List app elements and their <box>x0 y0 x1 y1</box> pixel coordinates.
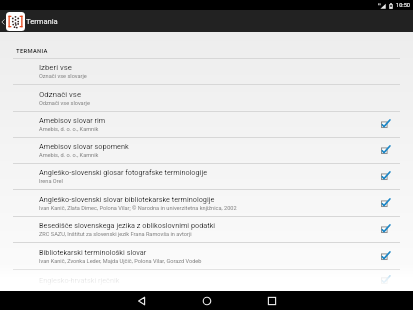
staticText: ZRC SAZU, Inštitut za slovenski jezik Fr… <box>39 231 192 238</box>
staticText: Besedišče slovenskega jezika z oblikoslo… <box>39 221 216 230</box>
button[interactable]: Besedišče slovenskega jezika z oblikoslo… <box>0 217 413 242</box>
staticText: Označi vse slovarje <box>39 73 87 80</box>
staticText: Amebisov slovar rim <box>39 116 106 125</box>
button[interactable]: Angleško-slovenski glosar fotografske te… <box>0 164 413 189</box>
button[interactable]: Navigate up <box>0 12 26 31</box>
button[interactable]: Back <box>109 291 174 310</box>
button[interactable]: Bibliotekarski terminološki slovar <box>0 243 413 269</box>
button[interactable]: Izberi vse <box>0 59 413 84</box>
staticText: Ivan Kanič, Zvonka Leder, Majda Ujčič, P… <box>39 258 202 265</box>
staticText: Odznači vse <box>39 90 82 99</box>
button[interactable]: Amebisov slovar rim <box>0 112 413 137</box>
staticText: Amebis, d. o. o., Kamnik <box>39 152 99 159</box>
button[interactable]: Angleško-slovenski slovar bibliotekarske… <box>0 190 413 216</box>
staticText: Amebis, d. o. o., Kamnik <box>39 126 99 133</box>
staticText: Angleško-slovenski glosar fotografske te… <box>39 168 208 177</box>
button[interactable]: Recents <box>239 291 304 310</box>
staticText: Izberi vse <box>39 63 72 72</box>
button[interactable]: Amebisov slovar sopomenk <box>0 138 413 163</box>
staticText: Odznači vse slovarje <box>39 100 90 107</box>
staticText: TERMANIA <box>16 48 48 55</box>
button[interactable]: Home <box>174 291 239 310</box>
button[interactable]: Odznači vse <box>0 85 413 111</box>
staticText: Termania <box>26 17 58 26</box>
staticText: Ivan Kanič, Zlata Dimec, Polona Vilar; ©… <box>39 205 237 212</box>
staticText: Amebisov slovar sopomenk <box>39 142 129 151</box>
other: Navigate up <box>0 17 6 27</box>
staticText: 10:50 <box>396 2 410 9</box>
staticText: Englesko-hrvatski rječnik <box>39 276 120 285</box>
staticText: Angleško-slovenski slovar bibliotekarske… <box>39 195 215 204</box>
staticText: Bibliotekarski terminološki slovar <box>39 248 147 257</box>
staticText: Irena Orel <box>39 178 63 185</box>
other: Termania <box>6 12 25 31</box>
